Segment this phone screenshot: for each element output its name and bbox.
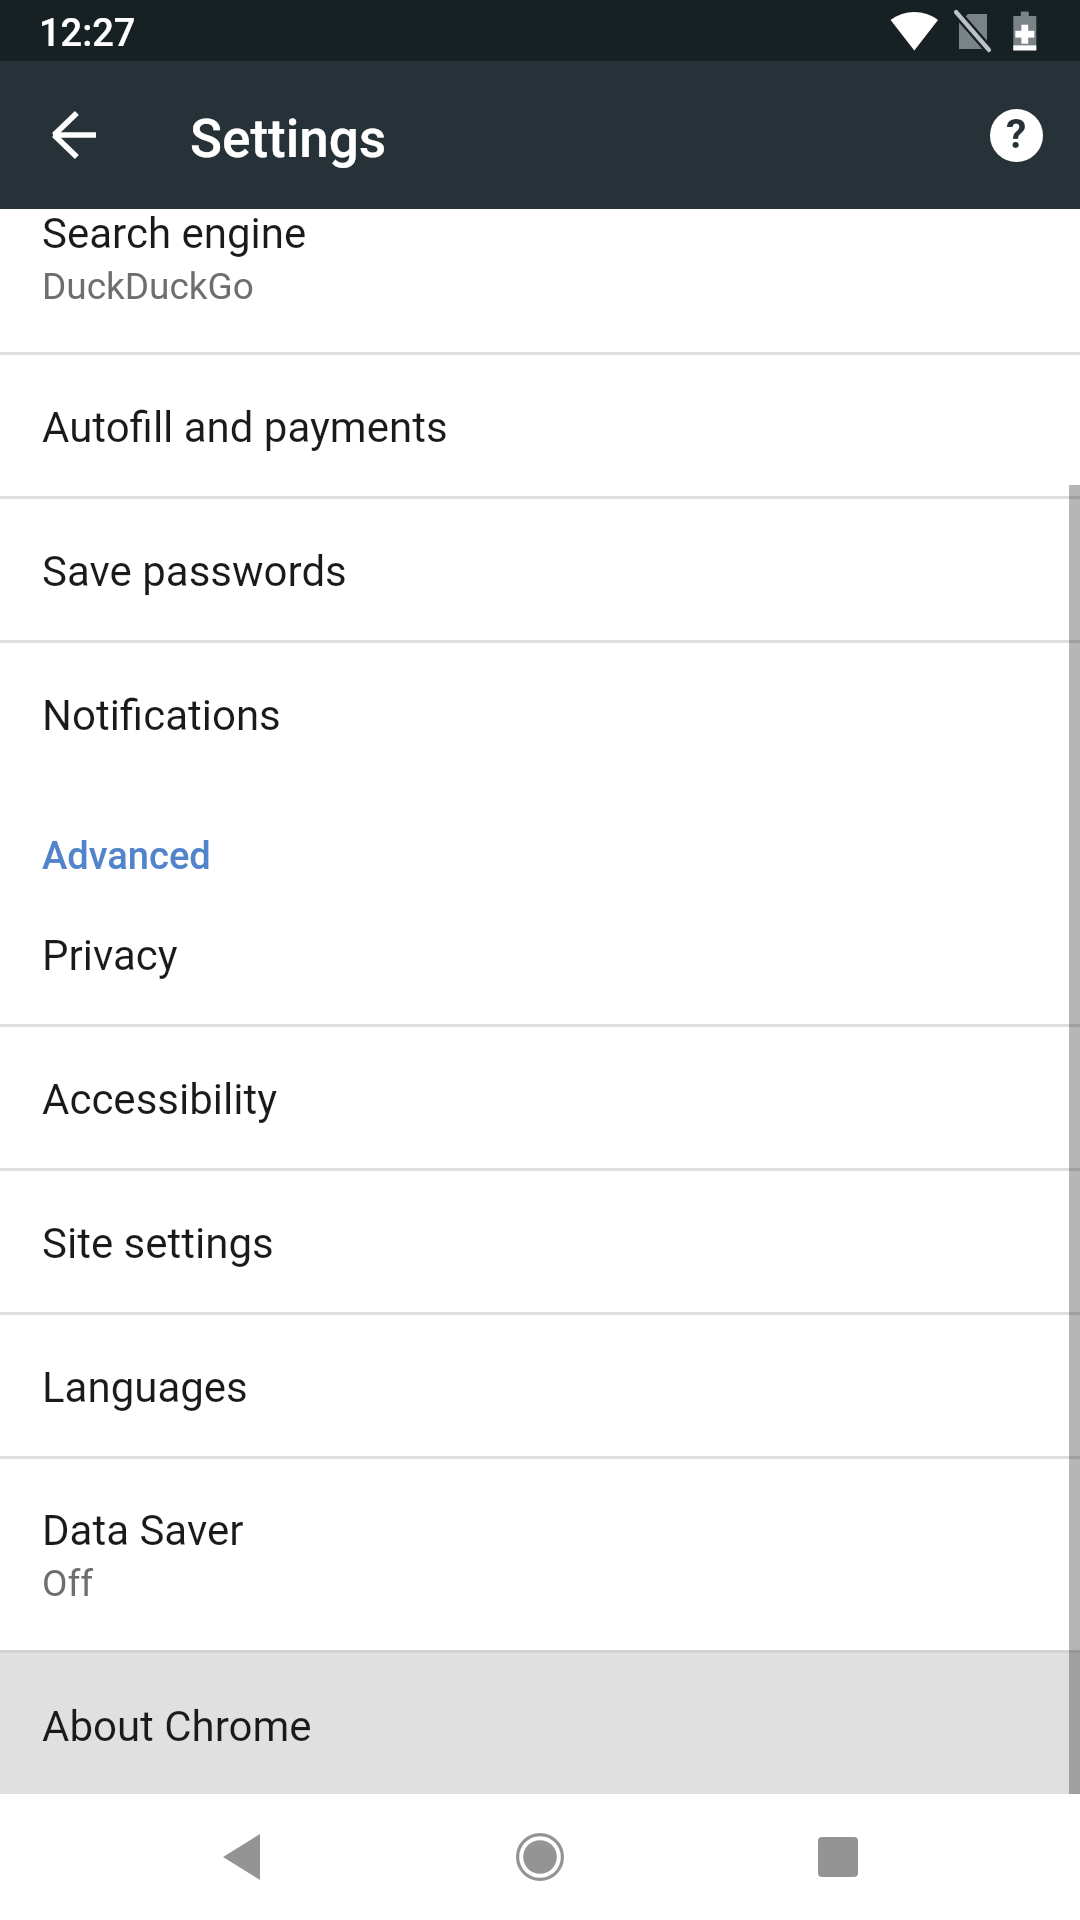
staticText: Data Saver	[42, 1506, 244, 1555]
button[interactable]: Navigate up	[26, 87, 122, 183]
button[interactable]: Recent apps	[783, 1794, 893, 1920]
button[interactable]: Notifications	[0, 643, 1080, 787]
staticText: Settings	[190, 108, 387, 170]
staticText: Accessibility	[42, 1075, 278, 1124]
button[interactable]: Help and feedback	[968, 87, 1064, 183]
staticText: ?	[1006, 110, 1027, 158]
staticText: Site settings	[42, 1219, 274, 1268]
staticText: Autofill and payments	[42, 403, 448, 452]
button[interactable]: Search engine	[0, 209, 1080, 355]
button[interactable]: Back	[186, 1794, 296, 1920]
button[interactable]: Accessibility	[0, 1027, 1080, 1171]
staticText: DuckDuckGo	[42, 265, 254, 308]
staticText: Search engine	[42, 209, 307, 258]
button[interactable]: Privacy	[0, 883, 1080, 1027]
button[interactable]: Save passwords	[0, 499, 1080, 643]
button[interactable]: Languages	[0, 1315, 1080, 1459]
button[interactable]: Autofill and payments	[0, 355, 1080, 499]
button[interactable]: Home	[485, 1794, 595, 1920]
staticText: About Chrome	[42, 1702, 312, 1751]
staticText: Notifications	[42, 691, 281, 740]
staticText: Save passwords	[42, 547, 347, 596]
staticText: Privacy	[42, 931, 178, 980]
staticText: Advanced	[42, 834, 211, 879]
button[interactable]: About Chrome	[0, 1653, 1080, 1794]
button[interactable]: Data Saver	[0, 1459, 1080, 1650]
button[interactable]: Site settings	[0, 1171, 1080, 1315]
staticText: Off	[42, 1562, 94, 1605]
staticText: Languages	[42, 1363, 248, 1412]
staticText: 12:27	[39, 11, 136, 56]
